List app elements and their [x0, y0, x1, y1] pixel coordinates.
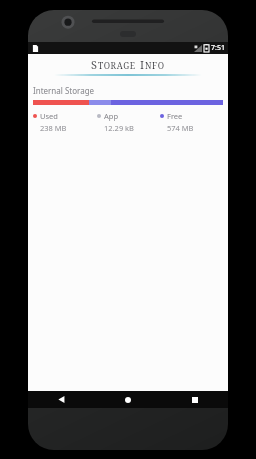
button[interactable]: Back — [28, 391, 94, 408]
staticText: NFO — [145, 60, 165, 72]
button[interactable]: Free — [160, 111, 223, 133]
staticText: I — [140, 57, 145, 72]
staticText: 574 MB — [167, 123, 194, 133]
staticText: Free — [167, 111, 183, 121]
staticText: S — [91, 57, 98, 72]
staticText: 7:51 — [211, 43, 225, 53]
button[interactable]: Recent apps — [161, 391, 228, 408]
staticText: Internal Storage — [33, 85, 95, 96]
button[interactable]: App — [97, 111, 160, 133]
button[interactable]: Home — [94, 391, 161, 408]
staticText: TORAGE — [98, 60, 136, 72]
button[interactable]: Used — [33, 111, 97, 133]
staticText: 238 MB — [40, 123, 67, 133]
staticText: App — [104, 111, 119, 121]
staticText: 12.29 kB — [104, 123, 134, 133]
staticText: Used — [40, 111, 58, 121]
